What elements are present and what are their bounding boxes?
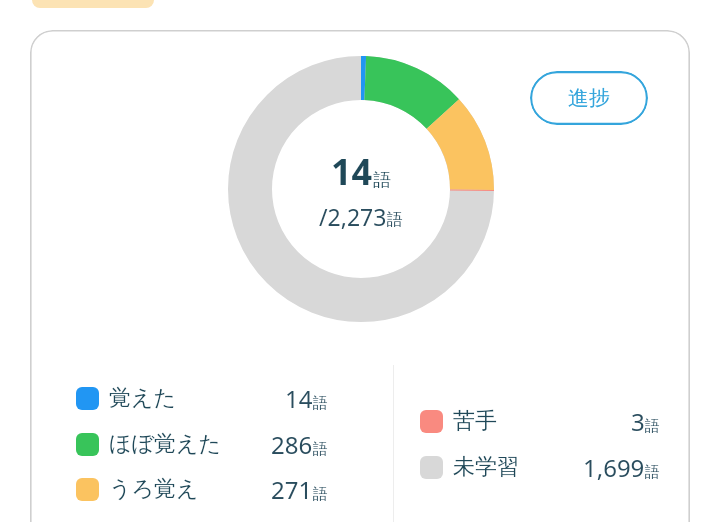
button[interactable]: うろ覚え: [76, 469, 328, 509]
staticText: 苦手: [453, 407, 497, 435]
staticText: 語: [373, 169, 391, 192]
staticText: 語: [313, 394, 328, 413]
staticText: 語: [645, 463, 660, 482]
staticText: 271: [271, 473, 313, 506]
staticText: /2,273: [319, 201, 387, 232]
staticText: うろ覚え: [109, 475, 199, 503]
staticText: 語: [645, 417, 660, 436]
staticText: 語: [387, 210, 403, 230]
staticText: 進捗: [568, 85, 610, 111]
staticText: 14: [331, 147, 373, 196]
staticText: 語: [313, 485, 328, 504]
staticText: ほぼ覚えた: [109, 430, 222, 458]
staticText: 未学習: [453, 453, 519, 481]
button[interactable]: 覚えた: [76, 378, 328, 418]
button[interactable]: [32, 0, 154, 8]
staticText: 覚えた: [109, 384, 177, 412]
staticText: 3: [631, 405, 645, 438]
staticText: 語: [313, 440, 328, 459]
staticText: 14: [285, 382, 313, 415]
staticText: 1,699: [583, 451, 645, 484]
staticText: 286: [271, 428, 313, 461]
button[interactable]: 苦手: [420, 401, 660, 441]
button[interactable]: 進捗: [530, 71, 648, 125]
button[interactable]: ほぼ覚えた: [76, 424, 328, 464]
button[interactable]: 未学習: [420, 447, 660, 487]
